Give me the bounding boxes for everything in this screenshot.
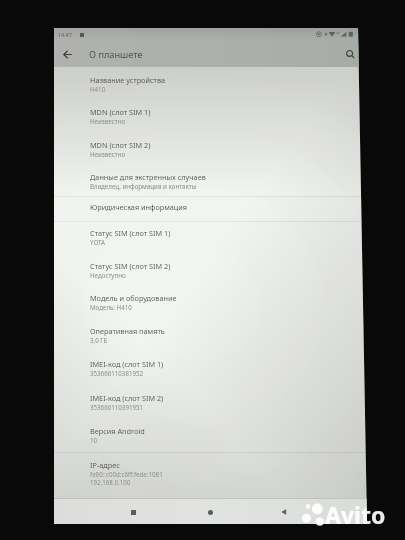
button[interactable]: Search — [337, 41, 363, 67]
button[interactable]: Юридическая информация — [54, 202, 367, 233]
button[interactable]: Back — [274, 502, 294, 522]
button[interactable]: Статус SIM (слот SIM 2) — [54, 261, 367, 292]
staticText: 3,0 ГБ — [90, 336, 108, 344]
staticText: Модель и оборудование — [90, 293, 177, 303]
staticText: Неизвестно — [90, 150, 126, 158]
staticText: Данные для экстренных случаев — [90, 172, 206, 182]
staticText: Avito — [325, 499, 386, 530]
staticText: H410 — [90, 85, 106, 93]
staticText: YOTA — [90, 238, 105, 246]
staticText: Версия Android — [90, 426, 145, 436]
staticText: 14:47 — [58, 31, 72, 38]
staticText: Название устройства — [90, 75, 166, 85]
button[interactable]: Back — [54, 41, 80, 67]
button[interactable]: Название устройства — [54, 75, 367, 106]
staticText: Владелец, информация и контакты — [90, 182, 197, 190]
button[interactable]: Модель и оборудование — [54, 293, 367, 324]
staticText: IP-адрес — [90, 460, 120, 470]
button[interactable]: Home — [200, 502, 220, 522]
staticText: IMEI-код (слот SIM 1) — [90, 359, 164, 369]
staticText: 353666110391951 — [90, 403, 144, 411]
button[interactable]: Оперативная память — [54, 326, 367, 357]
button[interactable]: IP-адрес — [54, 460, 367, 491]
staticText: IMEI-код (слот SIM 2) — [90, 393, 164, 403]
button[interactable]: IMEI-код (слот SIM 2) — [54, 393, 367, 424]
staticText: Оперативная память — [90, 326, 165, 336]
staticText: Юридическая информация — [90, 202, 188, 212]
staticText: Статус SIM (слот SIM 1) — [90, 228, 171, 238]
button[interactable]: MDN (слот SIM 1) — [54, 107, 367, 138]
staticText: fe80::c00d:c6ff:fede:1081 — [90, 470, 163, 478]
staticText: Модель: H410 — [90, 303, 132, 311]
button[interactable]: MDN (слот SIM 2) — [54, 140, 367, 171]
staticText: Неизвестно — [90, 117, 126, 125]
button[interactable]: IMEI-код (слот SIM 1) — [54, 359, 367, 390]
button[interactable]: Версия Android — [54, 426, 367, 457]
button[interactable]: Статус SIM (слот SIM 1) — [54, 228, 367, 259]
staticText: Недоступно — [90, 271, 126, 279]
button[interactable]: Данные для экстренных случаев — [54, 172, 367, 203]
staticText: 10 — [90, 436, 98, 444]
staticText: MDN (слот SIM 2) — [90, 140, 151, 150]
staticText: MDN (слот SIM 1) — [90, 107, 151, 117]
staticText: 192.168.0.100 — [90, 478, 131, 486]
button[interactable]: Recent apps — [123, 502, 143, 522]
staticText: 353666110381952 — [90, 369, 144, 377]
staticText: О планшете — [89, 48, 143, 61]
staticText: Статус SIM (слот SIM 2) — [90, 261, 171, 271]
